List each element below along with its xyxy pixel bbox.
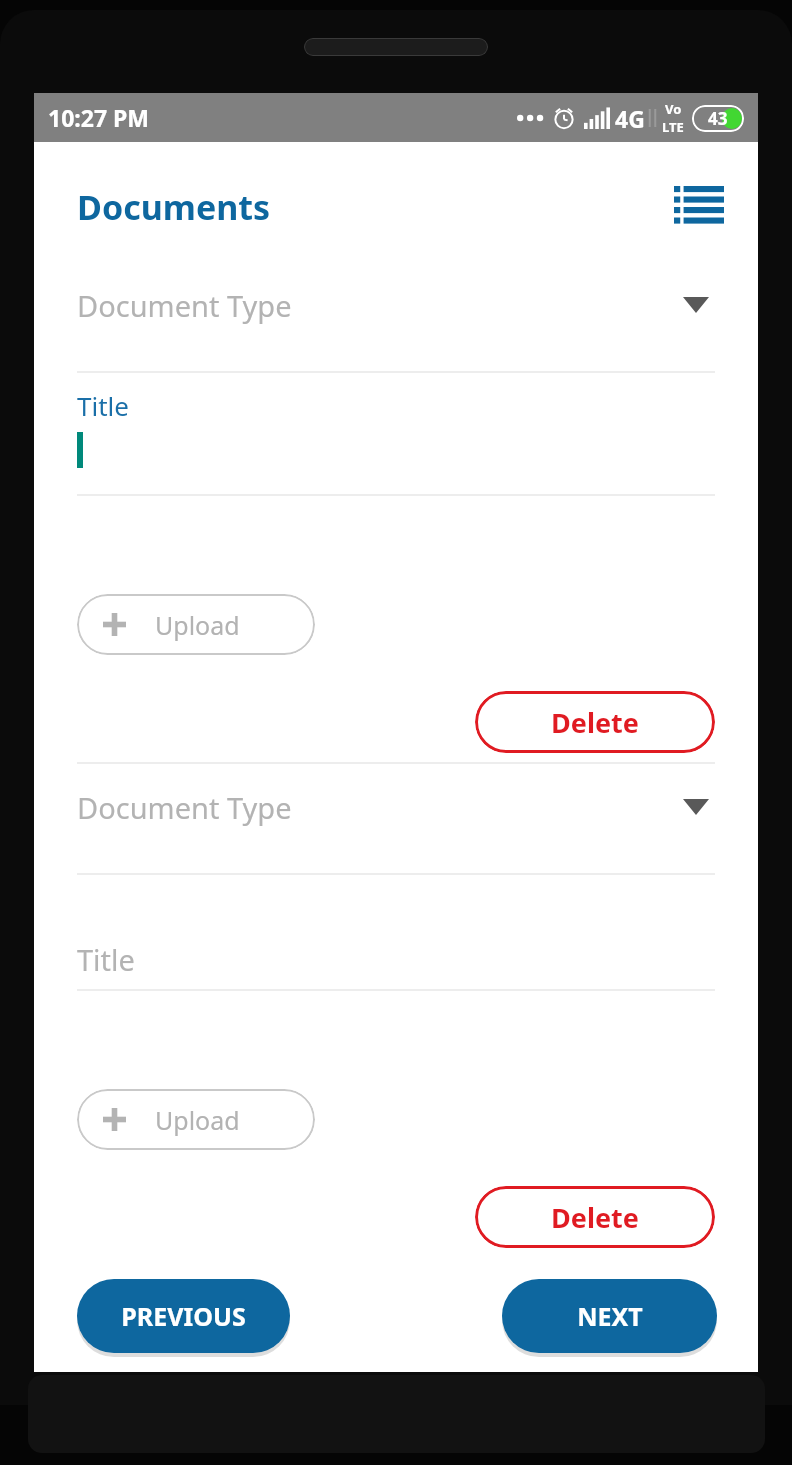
button[interactable]: PREVIOUS — [77, 1279, 290, 1353]
staticText: Delete — [551, 704, 639, 741]
button[interactable]: Upload — [77, 1089, 315, 1150]
staticText: Vo — [665, 100, 682, 118]
staticText: Documents — [77, 184, 271, 230]
staticText: Document Type — [77, 788, 292, 827]
staticText: 43 — [708, 107, 728, 130]
button[interactable]: Document Type — [77, 272, 715, 338]
button[interactable]: Title — [77, 933, 715, 985]
staticText: Delete — [551, 1199, 639, 1236]
button[interactable]: Document Type — [77, 774, 715, 840]
staticText: Document Type — [77, 286, 292, 325]
button[interactable]: Delete — [475, 691, 715, 753]
staticText: 4G — [615, 103, 645, 134]
staticText: Title — [77, 940, 135, 979]
staticText: Upload — [155, 608, 240, 642]
button[interactable]: NEXT — [502, 1279, 717, 1353]
button[interactable]: Upload — [77, 594, 315, 655]
staticText: LTE — [662, 118, 684, 136]
staticText: NEXT — [577, 1299, 643, 1333]
staticText: PREVIOUS — [121, 1299, 246, 1333]
button[interactable]: Title — [77, 388, 715, 494]
staticText: Upload — [155, 1103, 240, 1137]
button[interactable]: List view — [666, 174, 732, 240]
button[interactable]: Delete — [475, 1186, 715, 1248]
staticText: Title — [77, 388, 129, 423]
staticText: 10:27 PM — [48, 102, 150, 133]
